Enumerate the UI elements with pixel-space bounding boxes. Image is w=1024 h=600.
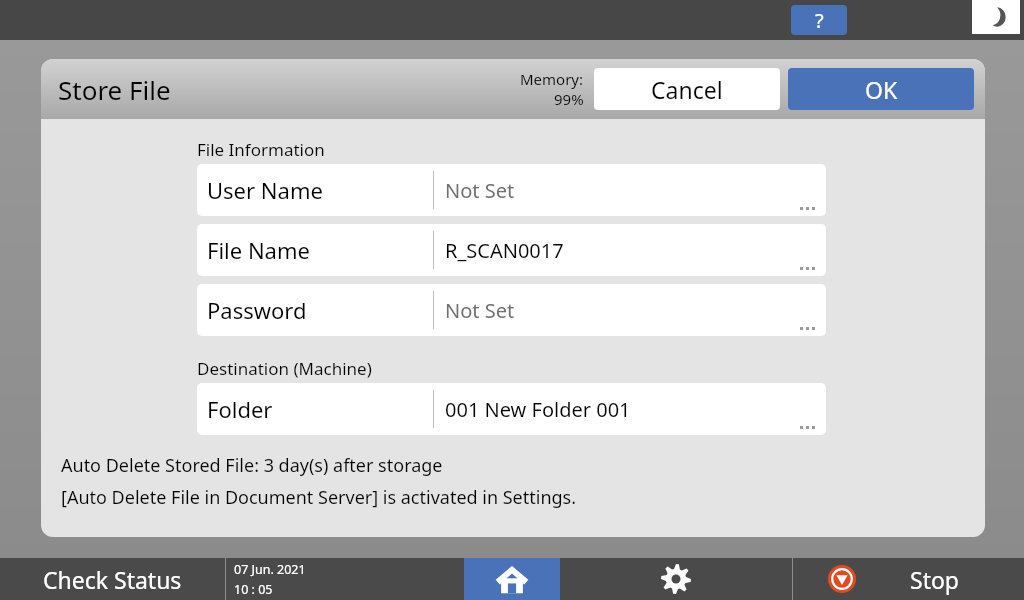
staticText: Destination (Machine) bbox=[197, 357, 372, 380]
button[interactable]: Settings bbox=[560, 558, 792, 600]
staticText: Check Status bbox=[43, 564, 182, 595]
staticText: ? bbox=[815, 7, 824, 34]
staticText: Password bbox=[207, 295, 307, 325]
staticText: Store File bbox=[58, 72, 171, 107]
staticText: Stop bbox=[910, 564, 959, 595]
staticText: OK bbox=[865, 74, 898, 105]
staticText: File Information bbox=[197, 138, 325, 161]
button[interactable]: User Name bbox=[197, 164, 826, 216]
staticText: 001 New Folder 001 bbox=[445, 396, 631, 423]
staticText: Not Set bbox=[445, 177, 515, 204]
button[interactable]: Check Status bbox=[0, 558, 225, 600]
button[interactable]: File Name bbox=[197, 224, 826, 276]
button[interactable]: OK bbox=[788, 68, 974, 110]
button[interactable]: Home bbox=[464, 558, 560, 600]
staticText: User Name bbox=[207, 175, 323, 205]
button[interactable]: Sleep mode bbox=[972, 0, 1020, 34]
staticText: [Auto Delete File in Document Server] is… bbox=[61, 485, 577, 510]
staticText: Not Set bbox=[445, 297, 515, 324]
staticText: Folder bbox=[207, 394, 273, 424]
button[interactable]: Cancel bbox=[594, 68, 780, 110]
staticText: Memory: bbox=[520, 69, 584, 89]
staticText: Cancel bbox=[651, 74, 723, 105]
staticText: 99% bbox=[554, 89, 584, 109]
staticText: Auto Delete Stored File: 3 day(s) after … bbox=[61, 453, 443, 478]
staticText: 07 Jun. 2021 bbox=[234, 561, 306, 578]
button[interactable]: Stop bbox=[793, 558, 1024, 600]
staticText: R_SCAN0017 bbox=[445, 237, 564, 264]
button[interactable]: Folder bbox=[197, 383, 826, 435]
staticText: File Name bbox=[207, 235, 310, 265]
button[interactable]: Help bbox=[791, 5, 847, 35]
button[interactable]: Password bbox=[197, 284, 826, 336]
staticText: 10 : 05 bbox=[234, 581, 273, 598]
